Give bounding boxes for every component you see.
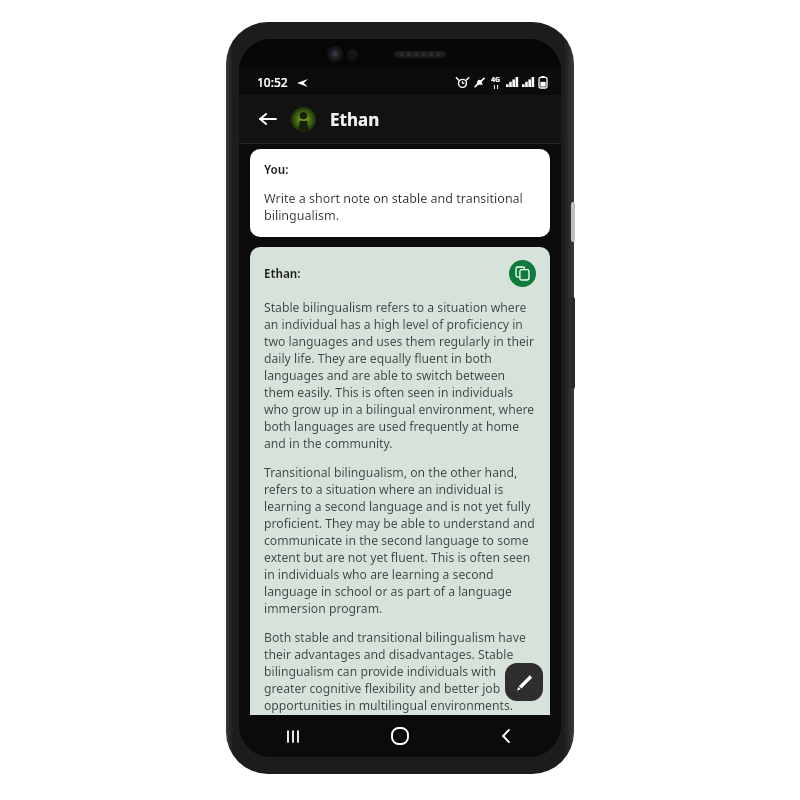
button[interactable]: You: [250, 149, 550, 237]
button[interactable]: Copy [509, 260, 536, 287]
button[interactable]: Back [249, 101, 285, 137]
staticText: 10:52 [257, 74, 288, 90]
button[interactable]: Recent apps [271, 715, 315, 757]
staticText: Ethan [330, 108, 380, 131]
button[interactable]: Ethan: [250, 247, 550, 715]
staticText: Write a short note on stable and transit… [264, 190, 536, 224]
staticText: 4G [491, 75, 501, 85]
staticText: Ethan: [264, 266, 301, 282]
button[interactable]: Home [378, 715, 422, 757]
button[interactable]: Back [485, 715, 529, 757]
staticText: You: [264, 162, 289, 178]
staticText: Stable bilingualism refers to a situatio… [264, 299, 536, 452]
staticText: Transitional bilingualism, on the other … [264, 464, 536, 617]
staticText: Both stable and transitional bilingualis… [264, 629, 536, 715]
button[interactable]: Compose [505, 663, 543, 701]
